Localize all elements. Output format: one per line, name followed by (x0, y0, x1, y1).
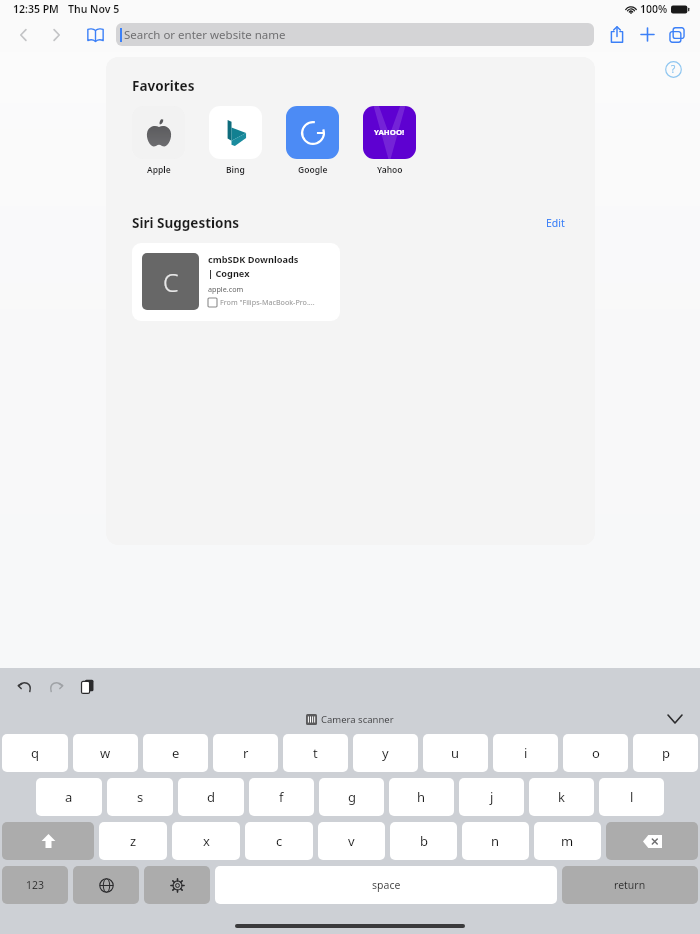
button[interactable]: Return (562, 866, 698, 904)
staticText: z (130, 832, 137, 850)
button[interactable]: t (283, 734, 348, 772)
staticText: Apple (147, 164, 171, 176)
button[interactable]: y (353, 734, 418, 772)
button[interactable]: Numbers (2, 866, 68, 904)
staticText: a (65, 788, 73, 806)
button[interactable]: r (213, 734, 278, 772)
staticText: From "Filips-MacBook-Pro.... (220, 297, 315, 307)
button[interactable]: Edit (542, 212, 569, 234)
button[interactable]: space (215, 866, 557, 904)
button[interactable]: h (389, 778, 454, 816)
button[interactable]: Shift (2, 822, 94, 860)
button[interactable]: p (633, 734, 698, 772)
staticText: e (172, 744, 180, 762)
staticText: g (348, 788, 356, 806)
staticText: p (662, 744, 670, 762)
button[interactable]: i (493, 734, 558, 772)
button[interactable]: e (143, 734, 208, 772)
button[interactable]: Back (8, 17, 40, 52)
button[interactable]: Delete (606, 822, 698, 860)
staticText: c (276, 832, 283, 850)
staticText: Camera scanner (321, 713, 394, 726)
button[interactable]: n (462, 822, 529, 860)
staticText: 12:35 PM (13, 2, 59, 16)
staticText: q (31, 744, 39, 762)
button[interactable]: Camera scanner (306, 713, 394, 726)
staticText: 100% (640, 2, 668, 16)
button[interactable]: v (318, 822, 385, 860)
staticText: Search or enter website name (124, 27, 286, 43)
button[interactable]: u (423, 734, 488, 772)
staticText: y (382, 744, 389, 762)
staticText: v (348, 832, 355, 850)
button[interactable]: a (36, 778, 102, 816)
button[interactable]: Help (662, 58, 684, 80)
staticText: Google (298, 164, 328, 176)
button[interactable]: Bookmarks (80, 17, 110, 52)
button[interactable]: b (390, 822, 457, 860)
button[interactable]: Change keyboard (73, 866, 139, 904)
button[interactable]: Paste (74, 673, 100, 699)
button[interactable]: g (319, 778, 384, 816)
staticText: n (491, 832, 500, 850)
button[interactable]: Share (602, 17, 632, 52)
staticText: Siri Suggestions (132, 214, 240, 232)
staticText: x (203, 832, 210, 850)
staticText: k (558, 788, 565, 806)
staticText: return (614, 878, 646, 892)
staticText: C (163, 265, 179, 299)
staticText: space (372, 878, 401, 892)
staticText: i (524, 744, 528, 762)
button[interactable]: l (599, 778, 664, 816)
staticText: b (420, 832, 428, 850)
staticText: Favorites (132, 77, 195, 95)
staticText: | Cognex (208, 267, 250, 280)
button[interactable]: x (172, 822, 240, 860)
staticText: t (313, 744, 318, 762)
button[interactable]: w (73, 734, 138, 772)
staticText: apple.com (208, 284, 244, 294)
button[interactable]: c (245, 822, 313, 860)
staticText: Thu Nov 5 (68, 2, 120, 16)
button[interactable]: New Tab (632, 17, 662, 52)
button[interactable]: Undo (12, 673, 38, 699)
staticText: d (207, 788, 215, 806)
button[interactable]: z (99, 822, 167, 860)
staticText: Bing (226, 164, 245, 176)
button[interactable]: o (563, 734, 628, 772)
staticText: j (490, 788, 494, 806)
staticText: f (279, 788, 284, 806)
staticText: cmbSDK Downloads (208, 253, 299, 266)
button[interactable]: Forward (40, 17, 72, 52)
button[interactable]: Bing (209, 106, 262, 176)
staticText: o (592, 744, 600, 762)
staticText: m (561, 832, 574, 850)
button[interactable]: C (132, 243, 340, 321)
staticText: w (100, 744, 111, 762)
button[interactable]: YAHOO! (363, 106, 416, 176)
button[interactable]: Keyboard settings (144, 866, 210, 904)
button[interactable]: Search or enter website name (116, 23, 594, 46)
staticText: r (243, 744, 249, 762)
staticText: ? (671, 62, 676, 76)
button[interactable]: d (178, 778, 244, 816)
button[interactable]: s (107, 778, 173, 816)
button[interactable]: Show Tabs (662, 17, 692, 52)
button[interactable]: f (249, 778, 314, 816)
button[interactable]: j (459, 778, 524, 816)
staticText: YAHOO! (374, 127, 405, 138)
button[interactable]: Google (286, 106, 339, 176)
staticText: Yahoo (377, 164, 403, 176)
button[interactable]: k (529, 778, 594, 816)
staticText: l (630, 788, 634, 806)
button[interactable]: q (2, 734, 68, 772)
button[interactable]: m (534, 822, 601, 860)
staticText: 123 (26, 878, 45, 892)
button[interactable]: Hide keyboard (664, 708, 686, 730)
staticText: u (451, 744, 460, 762)
staticText: s (137, 788, 144, 806)
staticText: Edit (546, 216, 565, 230)
button[interactable]: Apple (132, 106, 185, 176)
button[interactable]: Redo (43, 673, 69, 699)
staticText: h (417, 788, 426, 806)
